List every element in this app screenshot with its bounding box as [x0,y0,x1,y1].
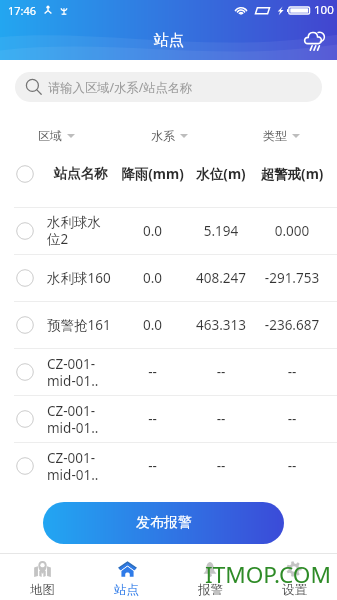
button[interactable]: 设置 [253,554,337,600]
staticText: 降雨(mm) [115,165,190,183]
staticText: CZ-001-mid-01.. [47,355,114,390]
staticText: -- [115,410,190,428]
staticText: 报警 [198,582,224,598]
staticText: 地图 [30,582,56,598]
staticText: CZ-001-mid-01.. [47,449,114,484]
staticText: 站点 [114,582,140,598]
button[interactable]: CZ-001-mid-01.. [0,396,337,442]
button[interactable]: 发布报警 [43,502,284,544]
staticText: 预警抢161 [47,316,114,334]
staticText: 100 [314,2,334,18]
staticText: 水利球水位2 [47,214,114,248]
staticText: -- [252,363,332,381]
staticText: 408.247 [190,269,252,287]
staticText: -- [190,410,252,428]
staticText: -- [115,363,190,381]
staticText: 5.194 [190,222,252,240]
button[interactable]: 站点 [85,554,169,600]
staticText: -- [252,410,332,428]
staticText: -- [252,457,332,475]
staticText: -- [190,363,252,381]
button[interactable]: 类型 [225,121,337,150]
staticText: 463.313 [190,316,252,334]
staticText: 超警戒(m) [252,165,332,183]
staticText: 0.0 [115,269,190,287]
button[interactable]: 报警 [169,554,253,600]
button[interactable]: 预警抢161 [0,302,337,348]
staticText: 水位(m) [190,165,252,183]
button[interactable]: 请输入区域/水系/站点名称 [15,72,322,102]
button[interactable]: CZ-001-mid-01.. [0,443,337,489]
staticText: 请输入区域/水系/站点名称 [48,79,193,96]
button[interactable]: 水利球160 [0,255,337,301]
staticText: 类型 [263,128,287,143]
button[interactable]: CZ-001-mid-01.. [0,349,337,395]
staticText: CZ-001-mid-01.. [47,402,114,437]
button[interactable]: 地图 [0,554,85,600]
staticText: 水利球160 [47,269,114,287]
staticText: 站点 [154,31,184,50]
button[interactable]: 水系 [113,121,225,150]
staticText: -236.687 [252,316,332,334]
staticText: ITMOP.COM [205,559,331,590]
staticText: 发布报警 [136,514,192,532]
staticText: 区域 [38,128,62,143]
staticText: 0.0 [115,316,190,334]
staticText: 0.0 [115,222,190,240]
staticText: 17:46 [8,3,37,18]
staticText: 站点名称 [47,165,114,182]
staticText: -- [190,457,252,475]
staticText: 0.000 [252,222,332,240]
staticText: 设置 [282,582,308,598]
staticText: 水系 [151,128,175,143]
button[interactable]: Weather [302,27,328,53]
staticText: -291.753 [252,269,332,287]
staticText: -- [115,457,190,475]
button[interactable]: 区域 [0,121,113,150]
button[interactable]: 水利球水位2 [0,208,337,254]
